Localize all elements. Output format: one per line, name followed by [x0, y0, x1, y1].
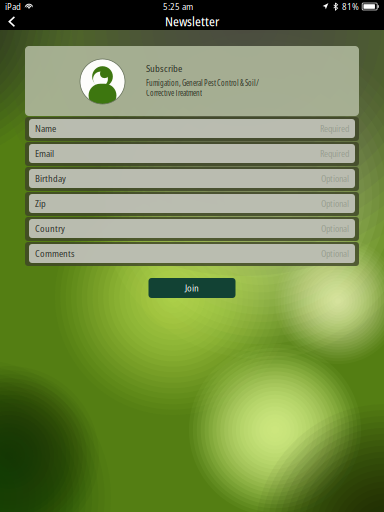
button[interactable]: Comments — [25, 242, 359, 267]
staticText: Birthday — [35, 172, 66, 185]
staticText: 5:25 am — [163, 0, 193, 13]
staticText: Corrective Treatment — [146, 88, 202, 98]
staticText: Optional — [321, 222, 349, 235]
staticText: Fumigation, General Pest Control & Soil/ — [146, 78, 259, 88]
staticText: Newsletter — [165, 13, 219, 30]
staticText: Optional — [321, 172, 349, 185]
staticText: Zip — [35, 197, 46, 210]
staticText: Optional — [321, 247, 349, 260]
button[interactable]: Country — [25, 217, 359, 242]
staticText: Email — [35, 147, 54, 160]
button[interactable]: Name — [25, 117, 359, 142]
button[interactable]: Join — [148, 278, 235, 298]
staticText: Country — [35, 222, 65, 235]
staticText: Required — [320, 147, 349, 160]
staticText: Join — [185, 282, 199, 294]
staticText: 81% — [342, 0, 359, 13]
staticText: Optional — [321, 197, 349, 210]
button[interactable]: Zip — [25, 192, 359, 217]
staticText: Required — [320, 122, 349, 135]
staticText: iPad — [5, 0, 21, 13]
staticText: Subscribe — [146, 62, 182, 75]
staticText: Name — [35, 122, 56, 135]
button[interactable]: Back — [0, 13, 24, 29]
button[interactable]: Email — [25, 142, 359, 167]
staticText: Comments — [35, 247, 75, 260]
button[interactable]: Birthday — [25, 167, 359, 192]
